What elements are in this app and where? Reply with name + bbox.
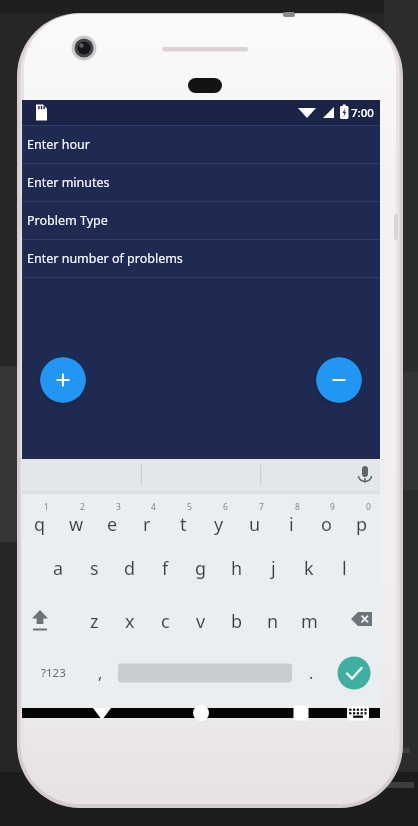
staticText: m [301, 609, 318, 634]
staticText: u [249, 512, 261, 537]
staticText: o [321, 512, 332, 537]
button[interactable]: 0 [344, 495, 380, 541]
button[interactable]: Problem Type [22, 201, 380, 239]
button[interactable]: Voice input [350, 461, 378, 489]
button[interactable]: k [291, 545, 327, 591]
staticText: , [98, 662, 103, 684]
staticText: t [180, 512, 187, 537]
button[interactable]: Add [40, 357, 86, 403]
staticText: i [289, 512, 294, 537]
button[interactable]: 2 [58, 495, 94, 541]
button[interactable]: d [112, 545, 148, 591]
button[interactable]: v [183, 598, 219, 644]
staticText: 6 [223, 501, 228, 513]
button[interactable]: . [296, 651, 326, 695]
staticText: r [143, 512, 151, 537]
button[interactable]: b [219, 598, 255, 644]
button[interactable]: Enter number of problems [22, 239, 380, 277]
staticText: h [231, 556, 243, 581]
staticText: z [90, 609, 99, 634]
button[interactable]: c [147, 598, 183, 644]
button[interactable]: Backspace [344, 598, 380, 644]
button[interactable]: Enter hour [22, 125, 380, 163]
button[interactable]: Switch keyboard [338, 708, 378, 718]
staticText: 0 [366, 501, 371, 513]
staticText: w [69, 512, 84, 537]
button[interactable]: m [291, 598, 327, 644]
button[interactable]: x [112, 598, 148, 644]
button[interactable]: ?123 [26, 651, 80, 695]
staticText: b [231, 609, 243, 634]
staticText: f [162, 556, 169, 581]
button[interactable]: 1 [22, 495, 58, 541]
button[interactable]: 6 [201, 495, 237, 541]
staticText: 3 [116, 501, 121, 513]
button[interactable]: 5 [165, 495, 201, 541]
staticText: d [124, 556, 136, 581]
button[interactable]: 4 [129, 495, 165, 541]
button[interactable]: 3 [94, 495, 130, 541]
staticText: 9 [330, 501, 335, 513]
staticText: s [90, 556, 99, 581]
staticText: 7:00 [351, 105, 374, 121]
button[interactable]: g [183, 545, 219, 591]
button[interactable]: Enter [332, 651, 376, 695]
button[interactable]: n [255, 598, 291, 644]
staticText: 2 [80, 501, 85, 513]
staticText: j [271, 556, 276, 581]
button[interactable]: Remove [316, 357, 362, 403]
staticText: x [125, 609, 135, 634]
staticText: l [342, 556, 347, 581]
staticText: 5 [187, 501, 192, 513]
staticText: 4 [151, 501, 156, 513]
staticText: k [304, 556, 314, 581]
button[interactable]: Recents [282, 708, 320, 718]
staticText: g [195, 556, 207, 581]
button[interactable]: z [76, 598, 112, 644]
button[interactable] [261, 459, 380, 491]
staticText: 8 [295, 501, 300, 513]
staticText: 7 [259, 501, 264, 513]
staticText: e [107, 512, 118, 537]
button[interactable]: j [255, 545, 291, 591]
button[interactable]: 7 [237, 495, 273, 541]
staticText: Enter minutes [27, 174, 110, 191]
staticText: Enter number of problems [27, 250, 183, 267]
staticText: q [34, 512, 46, 537]
staticText: 1 [44, 501, 49, 513]
staticText: Enter hour [27, 136, 90, 153]
button[interactable]: f [147, 545, 183, 591]
button[interactable]: 9 [308, 495, 344, 541]
button[interactable]: , [84, 651, 116, 695]
staticText: c [161, 609, 170, 634]
staticText: ?123 [41, 665, 66, 681]
staticText: v [196, 609, 206, 634]
button[interactable]: Space [116, 651, 294, 695]
staticText: p [356, 512, 368, 537]
button[interactable]: h [219, 545, 255, 591]
staticText: y [214, 512, 224, 537]
button[interactable]: Home [181, 708, 221, 718]
button[interactable]: Hide keyboard [82, 708, 122, 718]
staticText: n [267, 609, 279, 634]
staticText: . [309, 662, 314, 684]
staticText: Problem Type [27, 212, 108, 229]
button[interactable]: Enter minutes [22, 163, 380, 201]
button[interactable]: l [326, 545, 362, 591]
button[interactable]: a [40, 545, 76, 591]
staticText: a [53, 556, 64, 581]
button[interactable]: 8 [273, 495, 309, 541]
button[interactable]: Shift [22, 598, 58, 644]
button[interactable]: s [76, 545, 112, 591]
